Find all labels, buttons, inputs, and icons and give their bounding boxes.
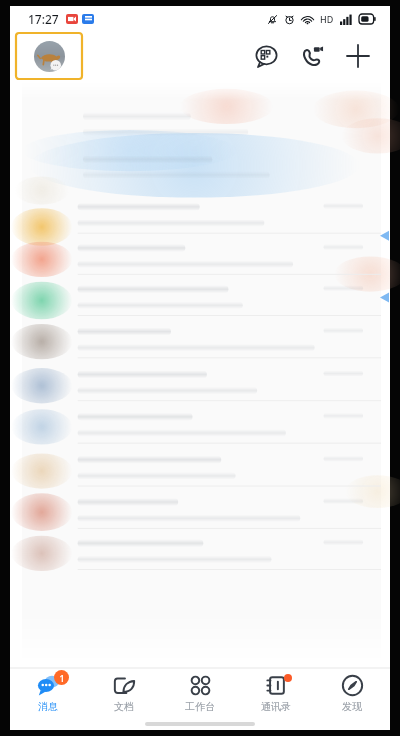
- button[interactable]: Scan QR code: [246, 36, 286, 76]
- button[interactable]: Video call: [292, 36, 332, 76]
- staticText: 发现: [342, 700, 362, 713]
- staticText: 消息: [38, 700, 58, 713]
- staticText: 1: [59, 672, 65, 684]
- button[interactable]: 通讯录: [238, 668, 314, 718]
- button[interactable]: [22, 80, 381, 668]
- button[interactable]: Profile: [16, 33, 82, 79]
- button[interactable]: Add: [338, 36, 378, 76]
- staticText: 通讯录: [261, 700, 291, 713]
- staticText: 17:27: [28, 11, 59, 27]
- button[interactable]: 工作台: [162, 668, 238, 718]
- staticText: 文档: [114, 700, 134, 713]
- staticText: HD: [320, 13, 334, 25]
- staticText: 工作台: [185, 700, 215, 713]
- button[interactable]: 1: [10, 668, 86, 718]
- button[interactable]: 文档: [86, 668, 162, 718]
- button[interactable]: 发现: [314, 668, 390, 718]
